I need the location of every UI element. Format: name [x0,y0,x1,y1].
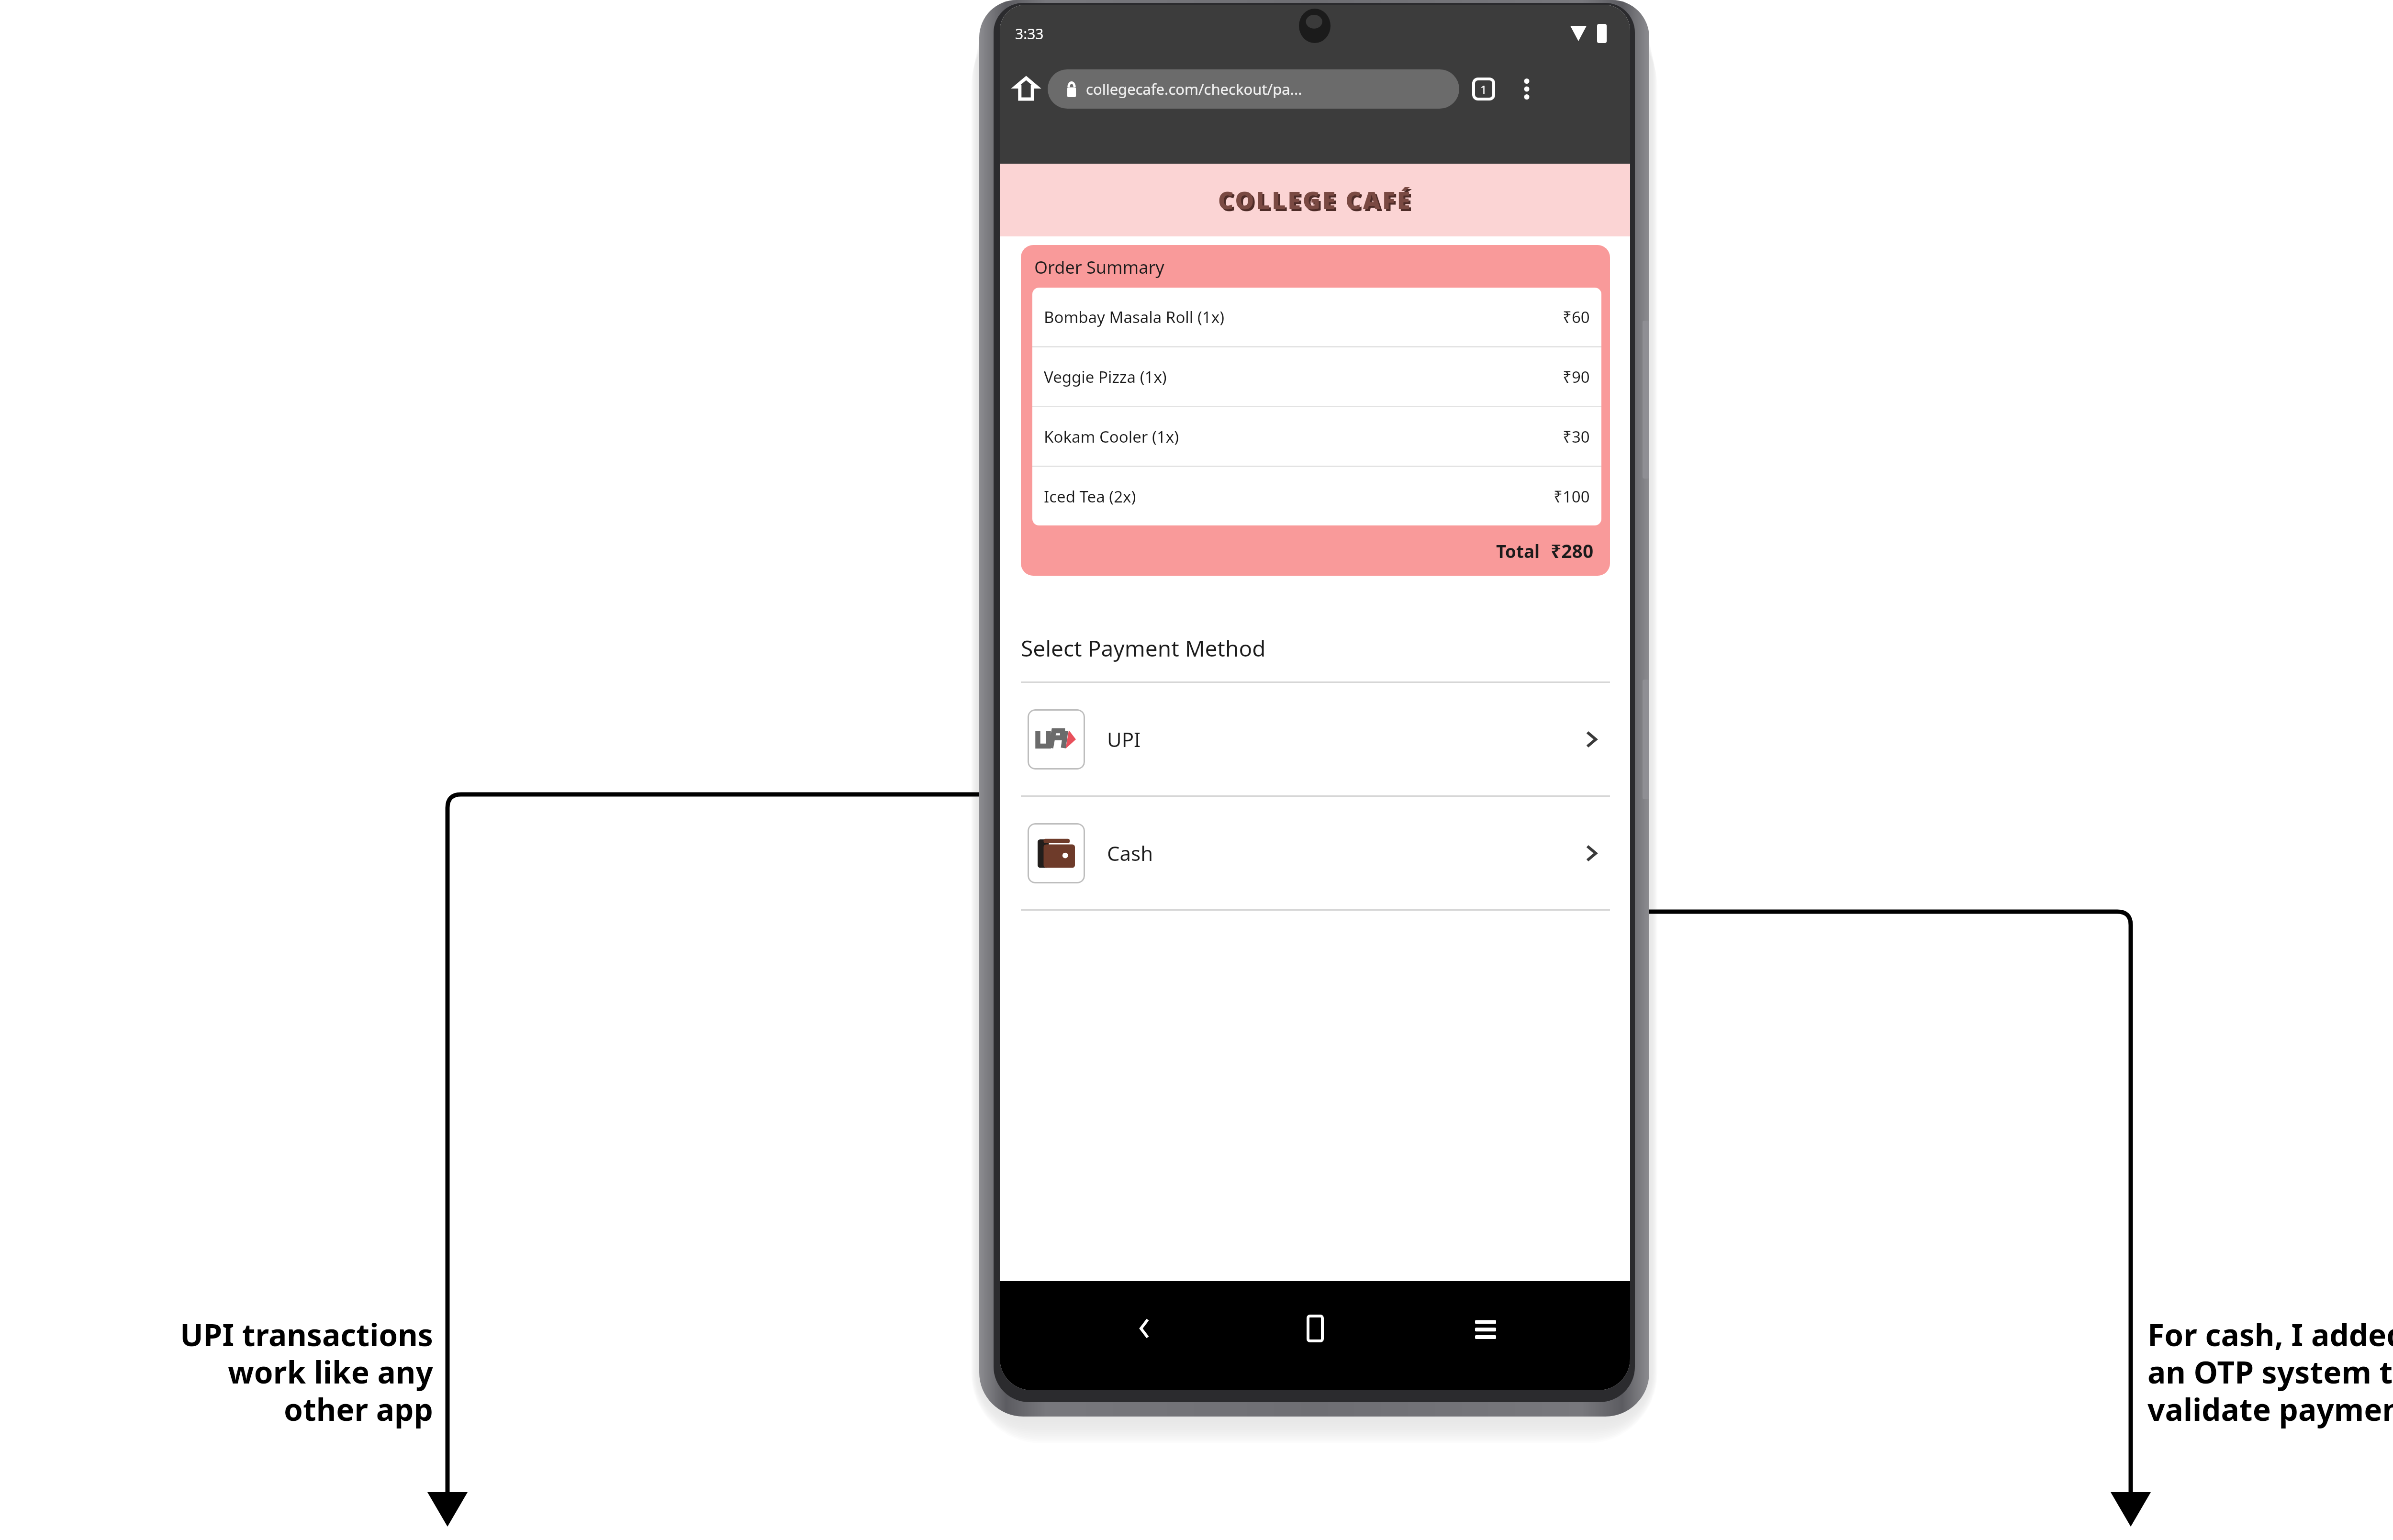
button[interactable]: Cash [1021,797,1610,909]
staticText: ₹60 [1563,306,1590,328]
other: Open Cash [1580,842,1602,864]
button[interactable]: UPI [1021,683,1610,795]
staticText: 1 [1480,81,1487,97]
staticText: Veggie Pizza (1x) [1044,366,1167,388]
staticText: ₹100 [1554,486,1590,507]
button[interactable]: Back [1118,1302,1171,1355]
staticText: 3:33 [1015,24,1044,44]
staticText: Kokam Cooler (1x) [1044,426,1179,447]
staticText: COLLEGE CAFÉ [1220,186,1414,218]
staticText: ₹280 [1551,538,1594,563]
button[interactable]: Home [1005,67,1048,110]
staticText: For cash, I added an OTP system to valid… [2147,1314,2393,1430]
staticText: ₹90 [1563,366,1590,388]
staticText: Iced Tea (2x) [1044,486,1136,507]
button[interactable]: Home [1289,1302,1342,1355]
staticText: UPI [1107,725,1141,753]
button[interactable]: More options [1507,69,1546,109]
button[interactable]: collegecafe.com/checkout/pa... [1048,69,1459,109]
staticText: Select Payment Method [1021,633,1266,663]
staticText: ₹30 [1563,426,1590,447]
staticText: UPI transactions work like any other app [29,1314,433,1430]
button[interactable]: Tabs [1464,69,1503,109]
staticText: COLLEGE CAFÉ [1218,184,1412,216]
staticText: Bombay Masala Roll (1x) [1044,306,1225,328]
staticText: Cash [1107,839,1153,867]
staticText: Order Summary [1034,256,1164,279]
staticText: collegecafe.com/checkout/pa... [1086,79,1302,99]
button[interactable]: Recent apps [1459,1302,1512,1355]
staticText: Total [1496,539,1540,563]
other: Open UPI [1580,728,1602,750]
